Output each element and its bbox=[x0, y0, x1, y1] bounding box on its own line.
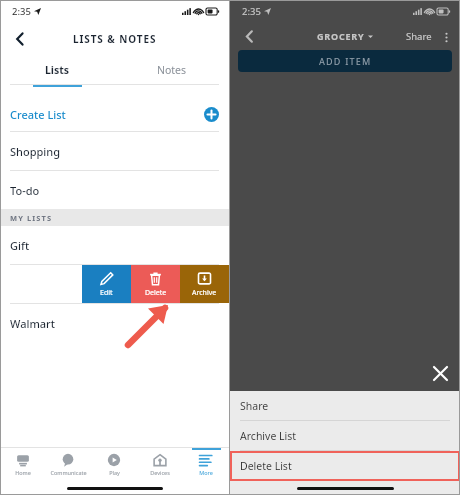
staticText: Delete List bbox=[240, 459, 292, 473]
button[interactable]: Communicate bbox=[45, 448, 91, 481]
staticText: Archive bbox=[192, 288, 217, 298]
button[interactable]: Devices bbox=[137, 448, 183, 481]
staticText: 2:35 bbox=[242, 5, 261, 18]
button[interactable]: Gift bbox=[0, 226, 229, 264]
staticText: Share bbox=[406, 30, 432, 43]
staticText: ADD ITEM bbox=[319, 55, 372, 67]
button[interactable]: Shopping bbox=[0, 132, 229, 170]
staticText: Share bbox=[240, 399, 269, 413]
staticText: More bbox=[199, 469, 213, 476]
staticText: Communicate bbox=[50, 469, 87, 476]
staticText: Delete bbox=[145, 288, 167, 298]
button[interactable]: ADD ITEM bbox=[238, 50, 452, 72]
button[interactable]: Notes bbox=[114, 56, 229, 84]
button[interactable]: Create List bbox=[0, 98, 229, 131]
button[interactable]: Edit bbox=[82, 265, 131, 303]
button[interactable]: Walmart bbox=[0, 304, 229, 342]
staticText: LISTS & NOTES bbox=[73, 32, 157, 46]
staticText: Create List bbox=[10, 107, 66, 122]
staticText: To-do bbox=[10, 183, 40, 198]
staticText: Play bbox=[109, 469, 120, 476]
staticText: MY LISTS bbox=[10, 213, 53, 223]
button[interactable]: Back bbox=[6, 25, 34, 53]
button[interactable]: Share bbox=[230, 391, 460, 420]
staticText: Edit bbox=[100, 288, 113, 298]
button[interactable]: Archive List bbox=[230, 421, 460, 450]
staticText: 2:35 bbox=[12, 5, 31, 18]
button[interactable]: More bbox=[183, 448, 229, 481]
staticText: Walmart bbox=[10, 316, 55, 331]
button[interactable]: Home bbox=[0, 448, 45, 481]
staticText: Devices bbox=[150, 469, 170, 476]
staticText: Shopping bbox=[10, 144, 60, 159]
staticText: Home bbox=[15, 469, 31, 476]
button[interactable]: Delete List bbox=[230, 451, 460, 481]
staticText: Gift bbox=[10, 238, 30, 253]
button[interactable]: Lists bbox=[0, 56, 114, 84]
staticText: Notes bbox=[157, 63, 187, 77]
button[interactable]: Archive bbox=[180, 265, 229, 303]
staticText: Archive List bbox=[240, 429, 297, 443]
button[interactable]: Delete bbox=[131, 265, 180, 303]
button[interactable]: GROCERY bbox=[317, 30, 373, 42]
button[interactable]: Share bbox=[402, 26, 436, 47]
button[interactable]: Close bbox=[428, 361, 452, 385]
button[interactable]: Back bbox=[236, 23, 262, 49]
button[interactable]: To-do bbox=[0, 171, 229, 209]
staticText: Lists bbox=[45, 63, 70, 77]
staticText: GROCERY bbox=[317, 30, 365, 42]
button[interactable]: Play bbox=[91, 448, 137, 481]
button[interactable]: More options bbox=[436, 27, 456, 47]
